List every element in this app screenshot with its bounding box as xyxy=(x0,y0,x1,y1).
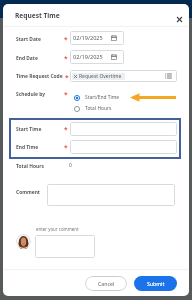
staticText: enter your comment xyxy=(36,226,79,232)
staticText: Submit xyxy=(147,280,165,287)
staticText: Start/End Time xyxy=(85,94,120,101)
button[interactable]: Cancel xyxy=(85,276,127,291)
button[interactable] xyxy=(70,140,177,154)
button[interactable]: Schedule by xyxy=(16,91,46,98)
button[interactable]: 02/19/2025 xyxy=(70,50,124,64)
button[interactable] xyxy=(47,184,175,206)
button[interactable] xyxy=(70,122,177,136)
button[interactable]: Comment xyxy=(16,189,40,196)
button[interactable]: Time Request Code xyxy=(16,73,63,80)
button[interactable]: Submit xyxy=(134,276,177,291)
button[interactable]: Total Hours xyxy=(16,163,44,170)
button[interactable]: End Date xyxy=(16,55,38,62)
button[interactable]: 02/19/2025 xyxy=(70,31,124,45)
staticText: * xyxy=(64,143,68,152)
button[interactable]: Request Time xyxy=(15,11,60,20)
button[interactable]: Close xyxy=(170,10,188,28)
staticText: * xyxy=(64,35,68,44)
button[interactable]: Start Time xyxy=(16,126,42,133)
staticText: Cancel xyxy=(98,280,115,287)
button[interactable]: Start/End Time xyxy=(74,94,120,101)
staticText: 0 xyxy=(69,162,72,169)
staticText: * xyxy=(64,90,68,99)
button[interactable]: Total Hours xyxy=(74,105,112,112)
staticText: * xyxy=(64,125,68,134)
staticText: * xyxy=(64,54,68,63)
staticText: * xyxy=(65,73,69,82)
button[interactable]: Request Overtime xyxy=(70,70,177,82)
button[interactable]: User avatar xyxy=(16,234,31,249)
staticText: Total Hours xyxy=(85,105,112,112)
staticText: 02/19/2025 xyxy=(73,53,103,61)
staticText: Request Overtime xyxy=(79,73,122,80)
button[interactable]: End Time xyxy=(16,144,39,151)
button[interactable]: Start Date xyxy=(16,36,41,43)
button[interactable] xyxy=(35,235,95,258)
staticText: 02/19/2025 xyxy=(73,34,103,42)
